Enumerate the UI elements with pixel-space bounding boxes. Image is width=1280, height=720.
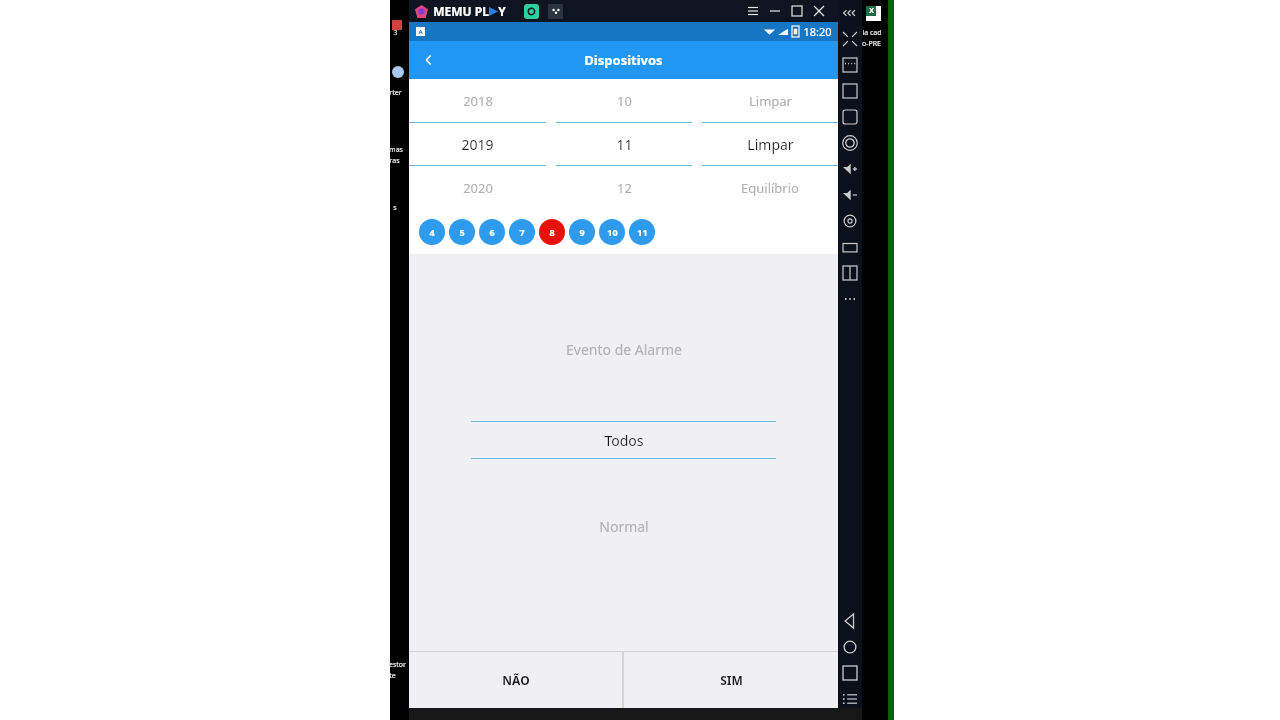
- button[interactable]: NÃO: [409, 652, 622, 708]
- staticText: Todos: [604, 431, 644, 450]
- button[interactable]: 11: [629, 219, 655, 245]
- staticText: o-PRE: [862, 39, 881, 49]
- staticText: la cad: [862, 28, 882, 38]
- staticText: Limpar: [749, 92, 792, 110]
- staticText: Evento de Alarme: [566, 340, 682, 359]
- button[interactable]: 5: [449, 219, 475, 245]
- staticText: NÃO: [502, 672, 530, 688]
- button[interactable]: Menu: [838, 686, 862, 712]
- staticText: s: [393, 203, 397, 213]
- staticText: 12: [617, 179, 632, 197]
- button[interactable]: Close: [808, 0, 830, 22]
- button[interactable]: Limpar: [702, 123, 838, 165]
- staticText: 11: [616, 135, 633, 154]
- button[interactable]: Collapse sidebar: [838, 0, 862, 26]
- button[interactable]: 2019: [409, 123, 546, 165]
- staticText: 7: [519, 226, 525, 238]
- staticText: 18:20: [803, 24, 832, 39]
- staticText: rter: [389, 88, 402, 98]
- staticText: 2019: [461, 135, 494, 154]
- button[interactable]: Full screen: [838, 26, 862, 52]
- button[interactable]: Back: [409, 41, 449, 79]
- button[interactable]: Menu: [742, 0, 764, 22]
- button[interactable]: SIM: [624, 652, 838, 708]
- staticText: 9: [579, 226, 585, 238]
- button[interactable]: Location: [838, 208, 862, 234]
- button[interactable]: 7: [509, 219, 535, 245]
- staticText: 2018: [463, 92, 493, 110]
- staticText: 6: [489, 226, 495, 238]
- staticText: Limpar: [747, 135, 794, 154]
- staticText: estor: [389, 660, 406, 670]
- staticText: A: [418, 28, 423, 36]
- button[interactable]: Maximize: [786, 0, 808, 22]
- button[interactable]: Recent apps: [838, 660, 862, 686]
- staticText: Equilíbrio: [741, 179, 799, 197]
- staticText: 4: [429, 226, 435, 238]
- button[interactable]: Back: [838, 608, 862, 634]
- staticText: 5: [459, 226, 465, 238]
- button[interactable]: 10: [599, 219, 625, 245]
- button[interactable]: Volume down: [838, 182, 862, 208]
- staticText: 8: [549, 226, 555, 238]
- button[interactable]: 8: [539, 219, 565, 245]
- button[interactable]: 6: [479, 219, 505, 245]
- button[interactable]: App icon: [548, 4, 563, 19]
- button[interactable]: Install APK: [838, 78, 862, 104]
- staticText: ras: [389, 156, 400, 166]
- staticText: mas: [389, 145, 403, 155]
- staticText: Y: [498, 3, 506, 19]
- staticText: Dispositivos: [584, 51, 663, 69]
- button[interactable]: Volume up: [838, 156, 862, 182]
- button[interactable]: Todos: [471, 422, 776, 458]
- button[interactable]: Home: [838, 634, 862, 660]
- staticText: 11: [637, 226, 648, 238]
- staticText: 3: [393, 28, 398, 38]
- staticText: MEMU PL: [433, 3, 489, 19]
- staticText: X: [869, 6, 874, 16]
- button[interactable]: 11: [556, 123, 692, 165]
- staticText: 2020: [463, 179, 493, 197]
- button[interactable]: Settings: [838, 130, 862, 156]
- staticText: SIM: [720, 672, 743, 688]
- button[interactable]: Rotate: [838, 260, 862, 286]
- staticText: te: [389, 671, 396, 681]
- button[interactable]: 4: [419, 219, 445, 245]
- staticText: 10: [607, 226, 618, 238]
- button[interactable]: 9: [569, 219, 595, 245]
- staticText: 10: [617, 92, 632, 110]
- button[interactable]: Multi window: [838, 104, 862, 130]
- staticText: Normal: [599, 517, 649, 536]
- button[interactable]: Keyboard: [838, 52, 862, 78]
- button[interactable]: More options: [838, 286, 862, 312]
- button[interactable]: Screenshot: [524, 4, 539, 19]
- button[interactable]: Minimize: [764, 0, 786, 22]
- button[interactable]: Shared folder: [838, 234, 862, 260]
